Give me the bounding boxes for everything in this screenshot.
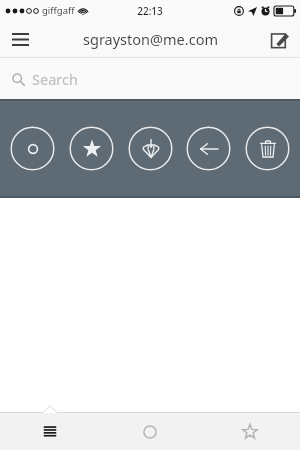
staticText: giffgaff	[42, 4, 75, 17]
button[interactable]: Flag	[69, 126, 114, 171]
button[interactable]: Search	[0, 58, 300, 99]
staticText: 22:13	[137, 4, 163, 18]
button[interactable]: Flagged	[200, 413, 300, 450]
button[interactable]: All mail	[0, 413, 100, 450]
button[interactable]: Unread	[100, 413, 200, 450]
button[interactable]: Archive	[128, 126, 173, 171]
staticText: Search	[32, 69, 78, 89]
button[interactable]: Compose	[260, 21, 300, 57]
button[interactable]: Move	[186, 126, 231, 171]
button[interactable]: Menu	[0, 21, 40, 57]
button[interactable]: Delete	[245, 126, 290, 171]
button[interactable]: Mark unread	[10, 126, 55, 171]
staticText: sgrayston@me.com	[83, 29, 218, 49]
